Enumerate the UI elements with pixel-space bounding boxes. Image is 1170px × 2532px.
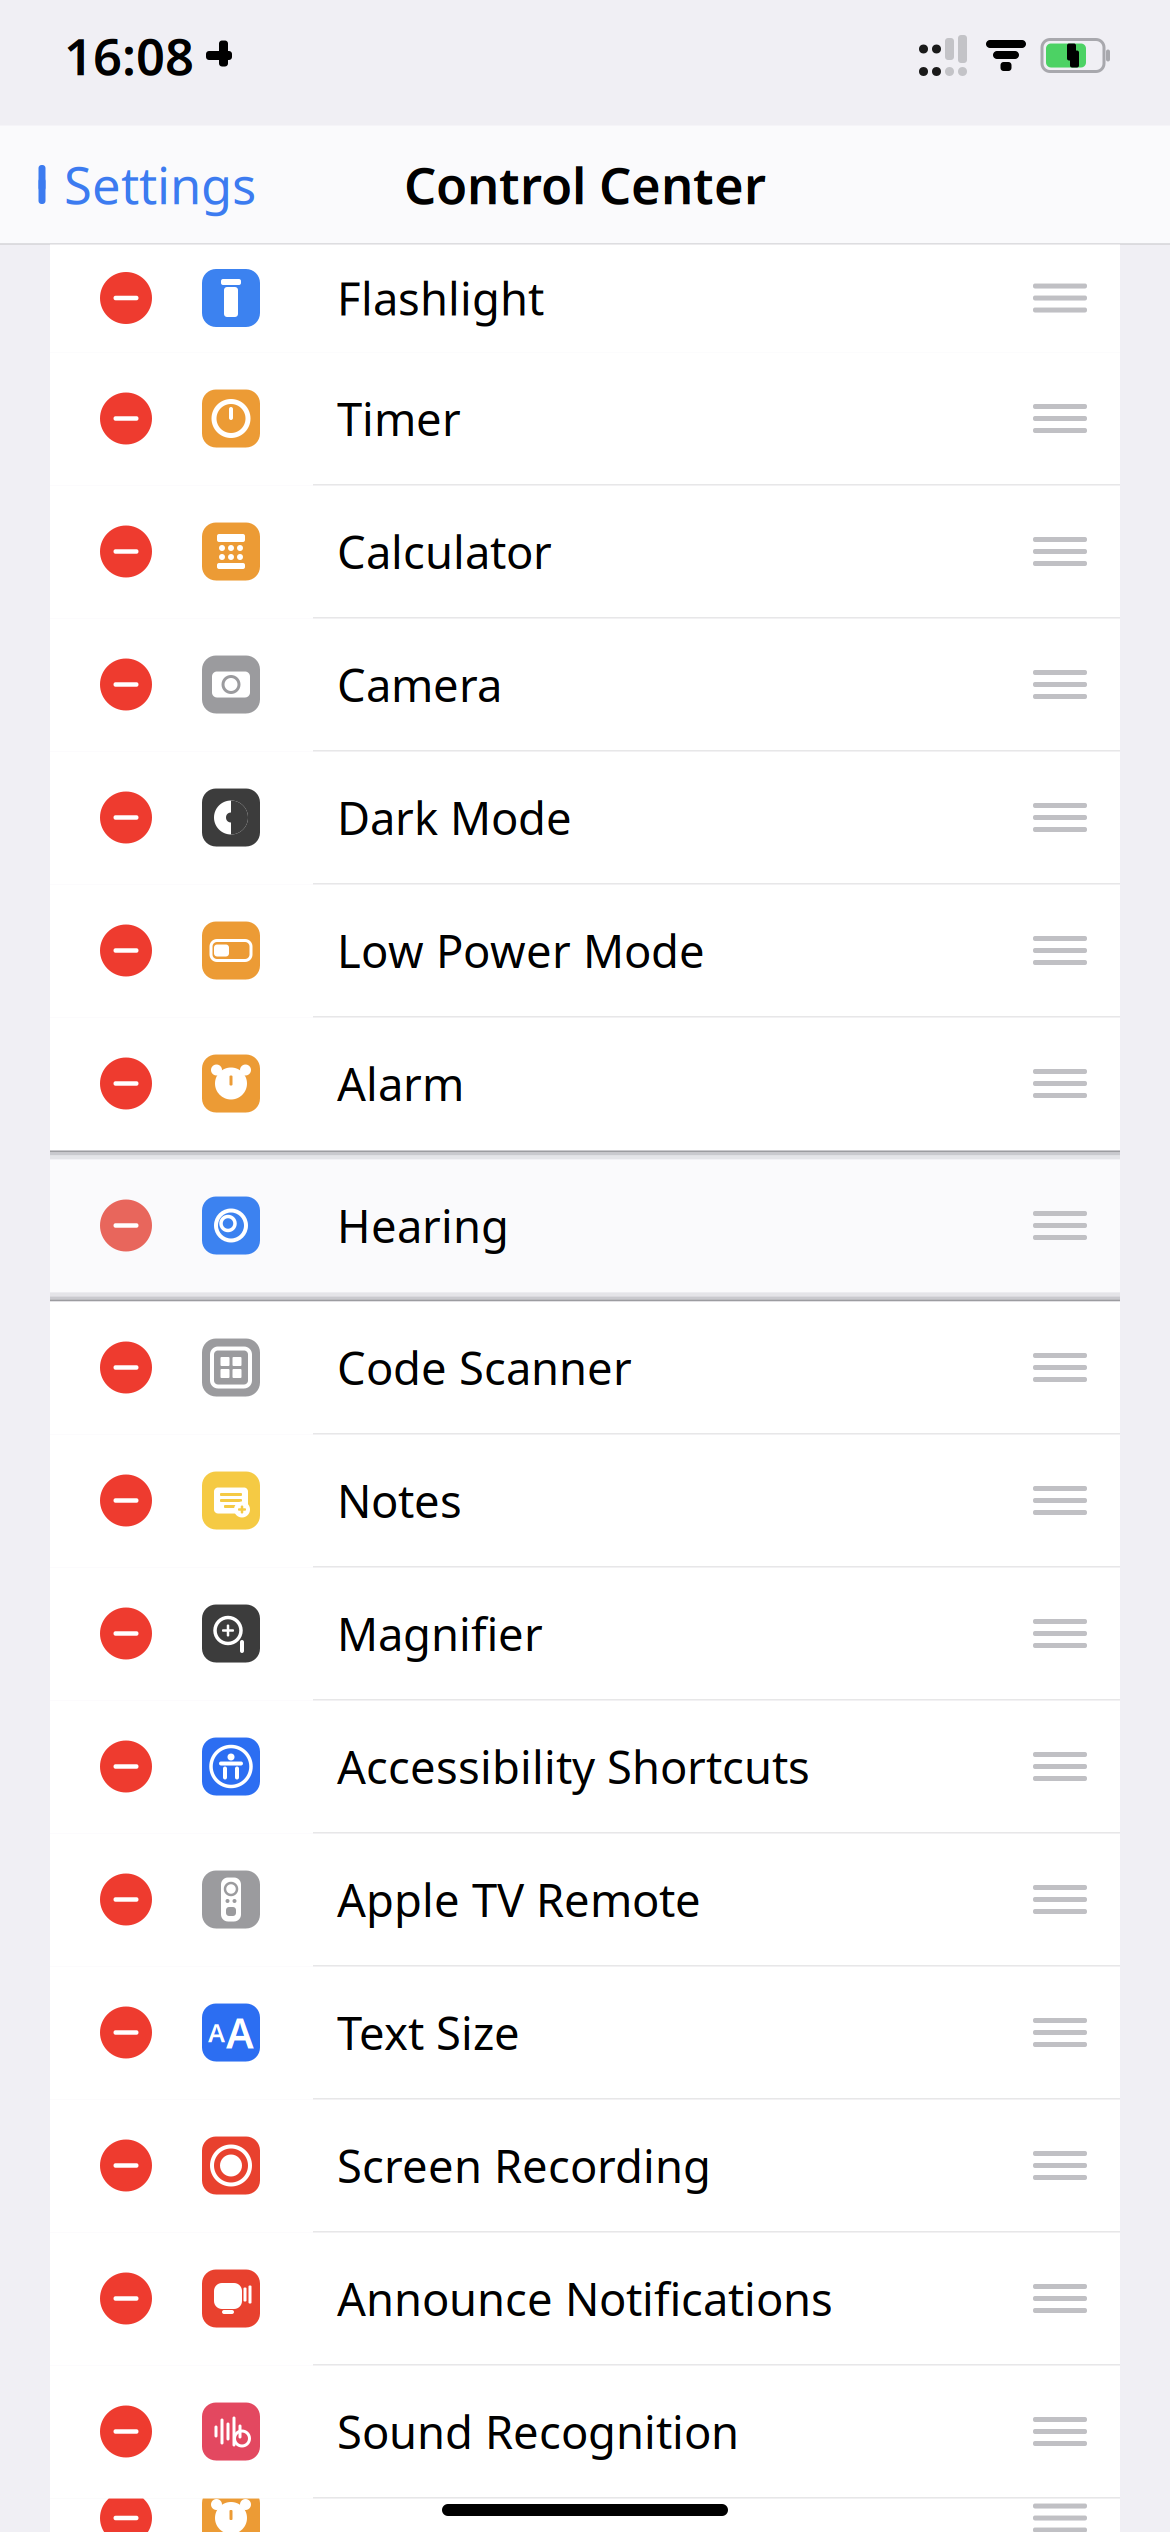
- button[interactable]: Reorder: [1012, 654, 1108, 714]
- button[interactable]: [50, 2452, 1120, 2532]
- staticText: Dark Mode: [337, 787, 572, 848]
- button[interactable]: Timer: [50, 352, 1120, 485]
- button[interactable]: Camera: [50, 618, 1120, 751]
- staticText: Calculator: [337, 521, 552, 582]
- button[interactable]: Remove: [100, 1474, 152, 1526]
- staticText: Announce Notifications: [337, 2268, 833, 2329]
- button[interactable]: Screen Recording: [50, 2099, 1120, 2232]
- button[interactable]: Hearing: [50, 1159, 1120, 1292]
- button[interactable]: Reorder: [1012, 1470, 1108, 1530]
- button[interactable]: Remove: [100, 2139, 152, 2191]
- button[interactable]: Calculator: [50, 485, 1120, 618]
- button[interactable]: Reorder: [1012, 1053, 1108, 1113]
- button[interactable]: Reorder: [1012, 1195, 1108, 1255]
- button[interactable]: Remove: [100, 1740, 152, 1792]
- button[interactable]: Settings: [0, 139, 256, 230]
- button[interactable]: Remove: [100, 1057, 152, 1109]
- staticText: Camera: [337, 654, 502, 715]
- button[interactable]: Remove: [100, 2272, 152, 2324]
- staticText: Apple TV Remote: [337, 1869, 701, 1930]
- staticText: Settings: [64, 151, 256, 218]
- button[interactable]: Remove: [100, 272, 152, 324]
- button[interactable]: Remove: [100, 658, 152, 710]
- button[interactable]: Reorder: [1012, 1603, 1108, 1663]
- button[interactable]: Reorder: [1012, 2002, 1108, 2062]
- button[interactable]: Flashlight: [50, 232, 1120, 365]
- button[interactable]: Code Scanner: [50, 1301, 1120, 1434]
- button[interactable]: Remove: [100, 1341, 152, 1393]
- button[interactable]: Remove: [100, 1199, 152, 1251]
- button[interactable]: Announce Notifications: [50, 2232, 1120, 2365]
- button[interactable]: Magnifier: [50, 1567, 1120, 1700]
- staticText: Accessibility Shortcuts: [337, 1736, 810, 1797]
- staticText: A: [208, 2016, 225, 2049]
- button[interactable]: Remove: [100, 2492, 152, 2532]
- staticText: 16:08: [64, 22, 194, 89]
- staticText: Code Scanner: [337, 1337, 632, 1398]
- button[interactable]: Remove: [100, 1607, 152, 1659]
- button[interactable]: Low Power Mode: [50, 884, 1120, 1017]
- staticText: Flashlight: [337, 268, 544, 328]
- staticText: Screen Recording: [337, 2135, 711, 2196]
- button[interactable]: Remove: [100, 791, 152, 843]
- staticText: Hearing: [337, 1195, 509, 1256]
- button[interactable]: Reorder: [1012, 920, 1108, 980]
- staticText: Text Size: [337, 2002, 520, 2063]
- button[interactable]: Reorder: [1012, 388, 1108, 448]
- button[interactable]: Remove: [100, 2006, 152, 2058]
- staticText: Sound Recognition: [337, 2401, 739, 2462]
- staticText: Notes: [337, 1470, 462, 1531]
- staticText: Timer: [337, 388, 461, 449]
- button[interactable]: Apple TV Remote: [50, 1833, 1120, 1966]
- button[interactable]: Reorder: [1012, 2135, 1108, 2195]
- staticText: A: [226, 2005, 254, 2060]
- button[interactable]: Notes: [50, 1434, 1120, 1567]
- button[interactable]: Reorder: [1012, 1869, 1108, 1929]
- button[interactable]: Alarm: [50, 1017, 1120, 1150]
- button[interactable]: Remove: [100, 392, 152, 444]
- button[interactable]: Reorder: [1012, 1337, 1108, 1397]
- button[interactable]: Reorder: [1012, 521, 1108, 581]
- button[interactable]: Remove: [100, 1873, 152, 1925]
- button[interactable]: A: [50, 1966, 1120, 2099]
- button[interactable]: Remove: [100, 525, 152, 577]
- button[interactable]: Reorder: [1012, 787, 1108, 847]
- button[interactable]: Reorder: [1012, 2401, 1108, 2461]
- button[interactable]: Reorder: [1012, 268, 1108, 328]
- button[interactable]: Accessibility Shortcuts: [50, 1700, 1120, 1833]
- staticText: Alarm: [337, 1053, 464, 1114]
- button[interactable]: Sound Recognition: [50, 2365, 1120, 2498]
- button[interactable]: Remove: [100, 924, 152, 976]
- button[interactable]: Reorder: [1012, 2268, 1108, 2328]
- button[interactable]: Remove: [100, 2405, 152, 2457]
- button[interactable]: Reorder: [1012, 2488, 1108, 2532]
- button[interactable]: Dark Mode: [50, 751, 1120, 884]
- staticText: Low Power Mode: [337, 920, 705, 981]
- staticText: Magnifier: [337, 1603, 543, 1664]
- staticText: Control Center: [404, 151, 766, 218]
- button[interactable]: Reorder: [1012, 1736, 1108, 1796]
